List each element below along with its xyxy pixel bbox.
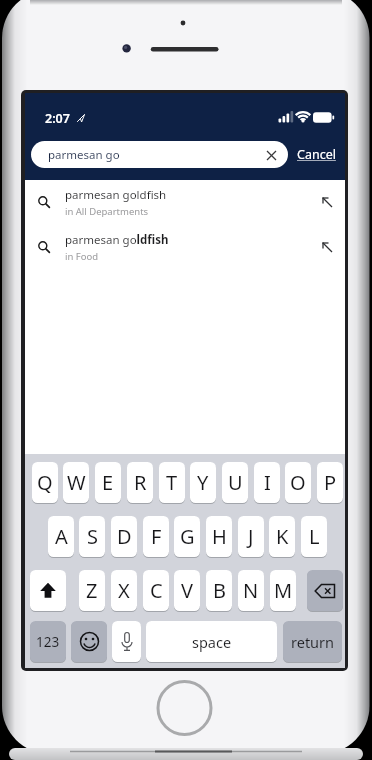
staticText: parmesan go (48, 147, 120, 163)
button[interactable]: parmesan goldfish (25, 180, 345, 225)
staticText: T (166, 469, 178, 496)
button[interactable]: J (238, 516, 264, 557)
staticText: G (180, 523, 195, 550)
button[interactable] (71, 621, 107, 662)
button[interactable] (30, 570, 66, 611)
button[interactable] (259, 143, 283, 167)
staticText: Q (37, 469, 53, 496)
button[interactable]: Z (79, 570, 105, 611)
button[interactable]: R (127, 462, 153, 503)
staticText: C (150, 577, 163, 604)
button[interactable] (307, 570, 343, 611)
button[interactable]: I (254, 462, 280, 503)
button[interactable]: K (269, 516, 295, 557)
staticText: M (274, 577, 293, 604)
staticText: X (118, 577, 130, 604)
staticText: in All Departments (65, 205, 149, 218)
button[interactable]: F (143, 516, 169, 557)
button[interactable]: V (174, 570, 200, 611)
button[interactable]: H (206, 516, 232, 557)
staticText: H (212, 523, 227, 550)
button[interactable] (158, 681, 211, 734)
button[interactable] (112, 621, 141, 662)
staticText: J (248, 523, 254, 550)
staticText: space (192, 632, 232, 652)
button[interactable]: 123 (30, 621, 66, 662)
button[interactable]: return (283, 621, 342, 662)
staticText: N (243, 577, 259, 604)
button[interactable]: O (285, 462, 311, 503)
button[interactable]: S (79, 516, 105, 557)
staticText: W (67, 469, 86, 496)
button[interactable]: X (111, 570, 137, 611)
staticText: K (276, 523, 289, 550)
staticText: F (151, 523, 162, 550)
staticText: V (181, 577, 193, 604)
button[interactable]: space (146, 621, 277, 662)
button[interactable]: B (206, 570, 232, 611)
staticText: D (117, 523, 132, 550)
button[interactable]: Y (190, 462, 216, 503)
staticText: Z (86, 577, 98, 604)
button[interactable]: L (301, 516, 327, 557)
staticText: 2:07 (45, 110, 70, 127)
staticText: return (291, 632, 335, 652)
button[interactable]: Q (32, 462, 58, 503)
button[interactable]: D (111, 516, 137, 557)
button[interactable]: M (270, 570, 296, 611)
button[interactable]: N (238, 570, 264, 611)
staticText: I (264, 469, 271, 496)
staticText: 123 (36, 633, 60, 651)
button[interactable]: W (63, 462, 89, 503)
staticText: E (102, 469, 114, 496)
staticText: R (134, 469, 147, 496)
staticText: in Food (65, 250, 99, 263)
button[interactable]: A (48, 516, 74, 557)
staticText: Cancel (297, 146, 336, 163)
button[interactable]: G (174, 516, 200, 557)
staticText: S (87, 523, 98, 550)
staticText: Y (197, 469, 209, 496)
button[interactable]: P (317, 462, 343, 503)
staticText: B (213, 577, 226, 604)
staticText: U (228, 469, 243, 496)
button[interactable]: Cancel (291, 141, 341, 168)
staticText: parmesan goldfish (65, 232, 169, 248)
staticText: O (290, 469, 306, 496)
button[interactable]: T (159, 462, 185, 503)
staticText: A (55, 523, 68, 550)
staticText: L (309, 523, 320, 550)
button[interactable]: U (222, 462, 248, 503)
button[interactable]: parmesan go (31, 141, 288, 168)
button[interactable]: E (95, 462, 121, 503)
staticText: parmesan goldfish (65, 187, 167, 203)
button[interactable]: parmesan goldfish (25, 225, 345, 270)
staticText: P (324, 469, 337, 496)
button[interactable]: C (143, 570, 169, 611)
